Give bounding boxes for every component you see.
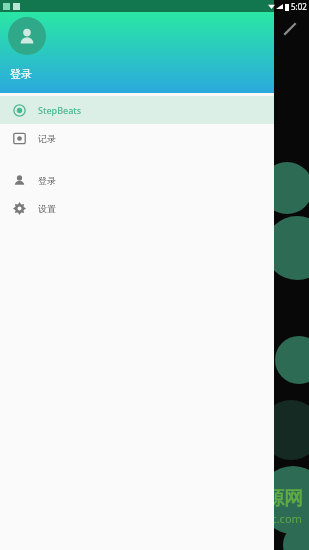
staticText: 5:02 xyxy=(291,1,307,12)
staticText: 设置 xyxy=(38,203,56,214)
button[interactable]: 登录 xyxy=(0,166,274,194)
button[interactable]: 登录 xyxy=(0,12,274,93)
staticText: 绿色资源网 xyxy=(208,487,303,511)
button[interactable]: StepBeats xyxy=(0,96,274,124)
button[interactable]: 设置 xyxy=(0,194,274,222)
staticText: 登录 xyxy=(10,67,32,81)
button[interactable]: 记录 xyxy=(0,124,274,152)
staticText: StepBeats xyxy=(38,104,82,116)
button[interactable]: Edit xyxy=(277,16,303,42)
staticText: 记录 xyxy=(38,133,56,144)
staticText: www.downcc.com xyxy=(209,511,302,526)
staticText: 登录 xyxy=(38,175,56,186)
